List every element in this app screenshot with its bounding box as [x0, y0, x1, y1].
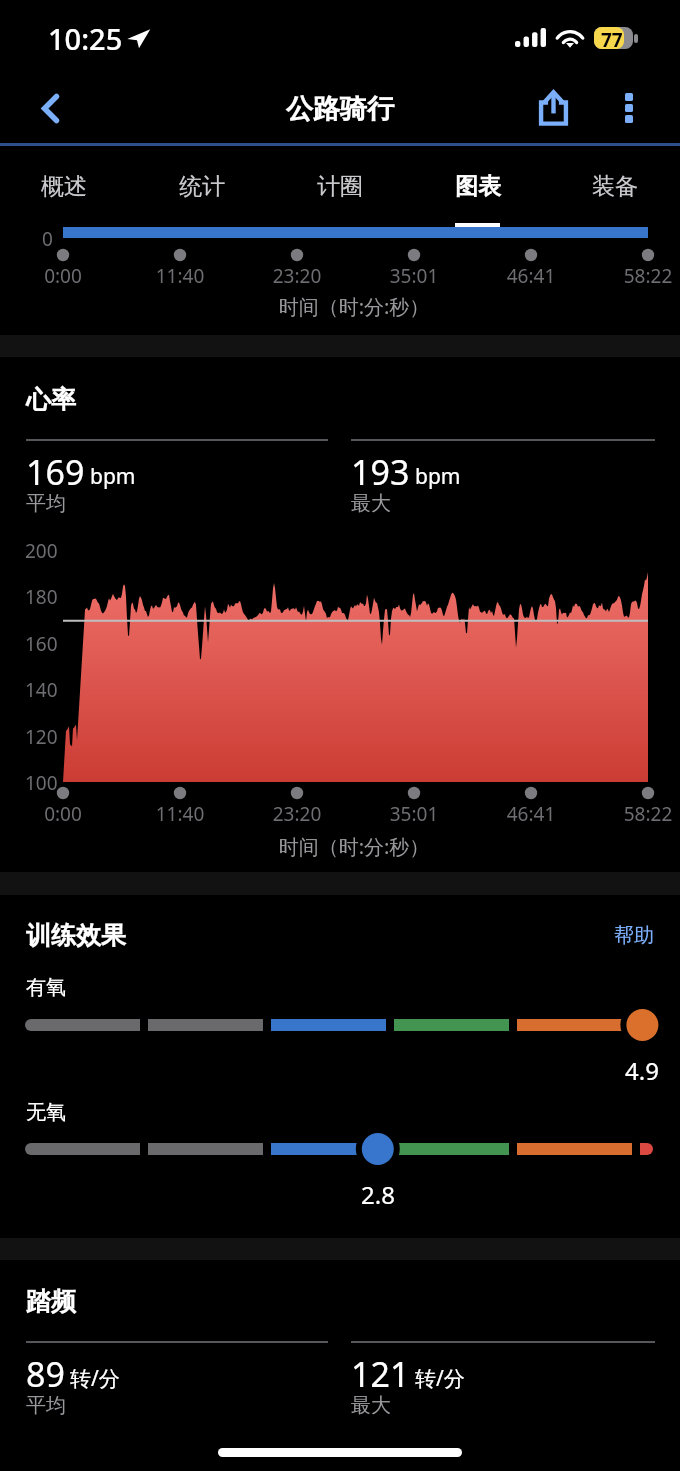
staticText: 最大	[351, 491, 391, 516]
staticText: 11:40	[130, 801, 230, 827]
staticText: 平均	[26, 491, 66, 516]
staticText: 装备	[592, 172, 638, 201]
staticText: 0:00	[13, 263, 113, 289]
staticText: 统计	[179, 172, 225, 201]
staticText: 10:25	[48, 19, 123, 58]
staticText: 193	[351, 449, 410, 495]
button[interactable]: 装备	[547, 149, 680, 221]
staticText: 160	[25, 631, 58, 657]
staticText: 帮助	[614, 923, 654, 948]
button[interactable]: Share	[518, 70, 588, 146]
staticText: 58:22	[598, 263, 680, 289]
staticText: 2.8	[328, 1178, 428, 1211]
staticText: 0	[42, 226, 53, 252]
staticText: 最大	[351, 1393, 391, 1418]
staticText: 11:40	[130, 263, 230, 289]
button[interactable]: More options	[600, 70, 658, 146]
staticText: 图表	[455, 172, 501, 201]
staticText: 121	[351, 1351, 410, 1397]
staticText: 169	[26, 449, 85, 495]
staticText: 23:20	[247, 263, 347, 289]
staticText: 无氧	[26, 1100, 66, 1125]
staticText: 训练效果	[26, 920, 126, 951]
staticText: 平均	[26, 1393, 66, 1418]
staticText: 时间（时:分:秒）	[14, 293, 680, 320]
staticText: 概述	[41, 172, 87, 201]
staticText: 转/分	[415, 1364, 465, 1393]
button[interactable]: 图表	[410, 149, 546, 221]
staticText: 计圈	[317, 172, 363, 201]
button[interactable]: 帮助	[606, 916, 662, 954]
staticText: 77	[601, 27, 623, 49]
staticText: 180	[25, 584, 58, 610]
staticText: 踏频	[26, 1286, 76, 1317]
staticText: 35:01	[364, 263, 464, 289]
staticText: 公路骑行	[286, 92, 394, 126]
staticText: 120	[25, 724, 58, 750]
staticText: 35:01	[364, 801, 464, 827]
button[interactable]: 计圈	[272, 149, 408, 221]
staticText: 46:41	[481, 801, 581, 827]
staticText: 200	[25, 538, 58, 564]
staticText: 23:20	[247, 801, 347, 827]
button[interactable]: 统计	[134, 149, 270, 221]
staticText: 46:41	[481, 263, 581, 289]
staticText: bpm	[90, 462, 136, 491]
button[interactable]: Back	[14, 70, 86, 146]
staticText: bpm	[415, 462, 461, 491]
staticText: 0:00	[13, 801, 113, 827]
staticText: 转/分	[70, 1364, 120, 1393]
staticText: 89	[26, 1351, 65, 1397]
button[interactable]: 概述	[0, 149, 132, 221]
staticText: 有氧	[26, 975, 66, 1000]
staticText: 58:22	[598, 801, 680, 827]
staticText: 心率	[26, 384, 76, 415]
staticText: 140	[25, 677, 58, 703]
staticText: 时间（时:分:秒）	[14, 833, 680, 860]
staticText: 100	[25, 770, 58, 796]
staticText: 4.9	[592, 1054, 680, 1087]
